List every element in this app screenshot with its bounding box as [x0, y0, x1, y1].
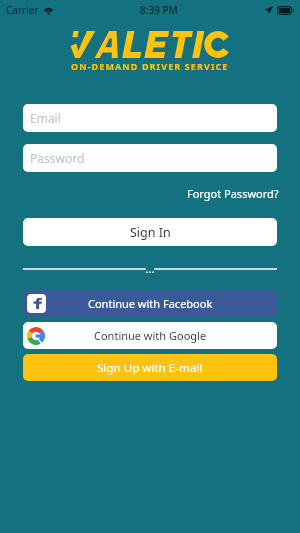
- button[interactable]: Sign Up with E-mail: [23, 354, 277, 381]
- staticText: Sign Up with E-mail: [97, 360, 203, 376]
- staticText: Email: [30, 110, 61, 126]
- staticText: 8:39 PM: [140, 3, 178, 17]
- staticText: Continue with Google: [94, 328, 207, 343]
- button[interactable]: Continue with Google: [23, 322, 277, 349]
- staticText: Carrier: [6, 3, 39, 17]
- staticText: Forgot Password?: [187, 186, 279, 201]
- staticText: ON-DEMAND DRIVER SERVICE: [71, 60, 229, 72]
- staticText: Continue with Facebook: [88, 296, 213, 311]
- button[interactable]: Sign In: [23, 218, 277, 246]
- button[interactable]: Password: [23, 144, 277, 172]
- button[interactable]: Continue with Facebook: [23, 290, 277, 317]
- staticText: Password: [30, 150, 85, 166]
- staticText: Sign In: [130, 224, 171, 241]
- button[interactable]: Forgot Password?: [186, 184, 280, 203]
- button[interactable]: Email: [23, 104, 277, 132]
